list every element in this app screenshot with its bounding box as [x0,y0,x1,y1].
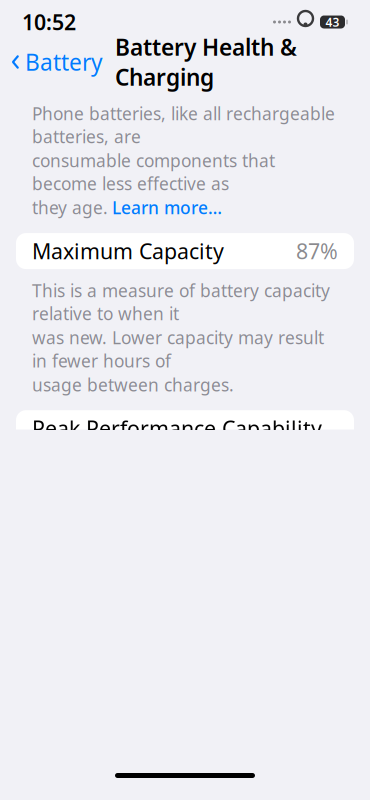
staticText: 43 [325,14,339,30]
staticText: This is a measure of battery capacity re… [32,279,330,325]
staticText: Battery [25,47,103,77]
staticText: usage between charges. [32,373,234,396]
staticText: Battery Health & Charging [115,32,297,92]
staticText: 10:52 [22,8,76,36]
staticText: 87% [296,237,338,265]
staticText: Phone batteries, like all rechargeable b… [32,102,335,148]
staticText: Learn more… [112,196,222,219]
button[interactable]: Maximum Capacity [16,233,354,269]
button[interactable]: Peak Performance Capability [16,410,354,446]
button[interactable]: Learn more… [112,196,222,219]
staticText: they age. [32,196,108,219]
button[interactable]: Battery [0,41,103,83]
staticText: was new. Lower capacity may result in fe… [32,326,324,372]
staticText: Maximum Capacity [32,237,224,265]
staticText: consumable components that become less e… [32,149,275,195]
staticText: Peak Performance Capability [32,414,322,442]
